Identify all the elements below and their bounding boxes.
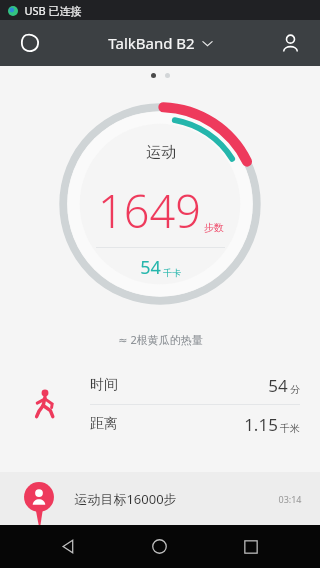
button[interactable]: 运动目标16000步 xyxy=(0,472,320,525)
button[interactable]: 距离 xyxy=(90,405,320,443)
button[interactable]: Back xyxy=(45,525,91,568)
staticText: 运动 xyxy=(146,143,176,162)
staticText: USB 已连接 xyxy=(24,3,82,18)
staticText: 运动目标16000步 xyxy=(74,490,177,508)
button[interactable]: Steps progress xyxy=(48,92,272,316)
button[interactable]: Recent apps xyxy=(228,525,274,568)
staticText: ≈ 2根黄瓜的热量 xyxy=(118,332,203,347)
staticText: 千卡 xyxy=(163,267,181,278)
staticText: 54 xyxy=(140,255,161,280)
button[interactable]: Profile xyxy=(270,23,310,63)
button[interactable]: Device band xyxy=(10,23,50,63)
staticText: 时间 xyxy=(90,376,118,394)
staticText: 1.15 xyxy=(244,413,278,436)
staticText: 千米 xyxy=(280,422,300,435)
staticText: TalkBand B2 xyxy=(108,33,195,53)
staticText: 1649 xyxy=(98,180,201,241)
button[interactable]: 时间 xyxy=(90,366,320,404)
button[interactable]: TalkBand B2 xyxy=(100,29,221,57)
staticText: 03:14 xyxy=(278,493,302,505)
staticText: 步数 xyxy=(204,221,224,234)
staticText: 分 xyxy=(290,383,300,396)
staticText: 距离 xyxy=(90,415,118,433)
button[interactable]: Home xyxy=(136,525,182,568)
staticText: 54 xyxy=(268,374,288,397)
